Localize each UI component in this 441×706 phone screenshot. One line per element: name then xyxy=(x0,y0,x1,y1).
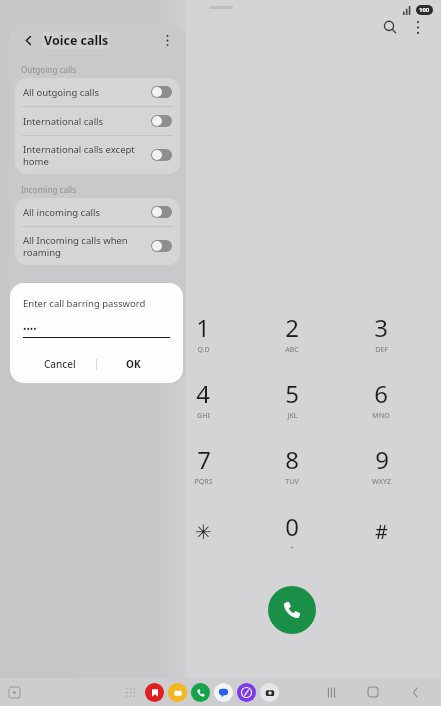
button[interactable]: Recent apps panel xyxy=(6,684,22,700)
button[interactable] xyxy=(151,240,172,252)
staticText: WXYZ xyxy=(372,477,391,487)
staticText: •••• xyxy=(23,322,37,334)
button[interactable]: Recents xyxy=(319,680,343,704)
button[interactable]: Cancel xyxy=(23,349,96,379)
button[interactable] xyxy=(151,115,172,127)
staticText: Voice calls xyxy=(44,32,109,49)
button[interactable]: 4 xyxy=(170,373,236,425)
staticText: 9 xyxy=(375,443,389,476)
staticText: All Incoming calls when roaming xyxy=(23,234,145,259)
staticText: Incoming calls xyxy=(21,184,77,195)
staticText: 2 xyxy=(285,311,299,344)
staticText: GHI xyxy=(197,411,210,421)
staticText: All outgoing calls xyxy=(23,86,145,99)
button[interactable] xyxy=(151,86,172,98)
staticText: 3 xyxy=(374,311,388,344)
button[interactable]: OK xyxy=(97,349,170,379)
button[interactable] xyxy=(151,206,172,218)
staticText: + xyxy=(290,544,294,552)
button[interactable]: Files xyxy=(168,683,187,702)
staticText: DEF xyxy=(375,345,388,355)
button[interactable]: Back xyxy=(403,680,427,704)
button[interactable]: Notes xyxy=(145,683,164,702)
button[interactable]: 7 xyxy=(170,439,236,491)
staticText: 5 xyxy=(285,377,299,410)
staticText: Enter call barring password xyxy=(23,297,146,310)
button[interactable]: # xyxy=(348,505,414,557)
staticText: ABC xyxy=(285,345,299,355)
staticText: 0 xyxy=(285,510,299,543)
button[interactable]: 5 xyxy=(259,373,325,425)
button[interactable]: ✳ xyxy=(170,505,236,557)
button[interactable]: 1 xyxy=(170,307,236,359)
button[interactable]: 3 xyxy=(348,307,414,359)
button[interactable]: Home xyxy=(361,680,385,704)
button[interactable]: All outgoing calls xyxy=(15,78,180,106)
button[interactable]: All incoming calls xyxy=(15,198,180,226)
button[interactable]: Phone xyxy=(191,683,210,702)
staticText: PQRS xyxy=(194,477,213,487)
staticText: ✳ xyxy=(195,520,212,543)
button[interactable]: All apps xyxy=(120,682,140,702)
button[interactable]: 9 xyxy=(348,439,414,491)
staticText: MNO xyxy=(372,411,390,421)
button[interactable]: 0 xyxy=(259,505,325,557)
staticText: 4 xyxy=(196,377,210,410)
staticText: Q.D xyxy=(197,345,210,355)
staticText: 8 xyxy=(285,443,299,476)
button[interactable]: Messages xyxy=(214,683,233,702)
button[interactable]: International calls xyxy=(15,107,180,135)
button[interactable]: 2 xyxy=(259,307,325,359)
staticText: JKL xyxy=(287,411,298,421)
button[interactable]: More options xyxy=(405,14,431,40)
staticText: OK xyxy=(126,357,141,371)
staticText: 100 xyxy=(419,6,430,14)
staticText: International calls except home xyxy=(23,143,145,168)
button[interactable]: More options xyxy=(157,30,177,50)
staticText: International calls xyxy=(23,115,145,128)
staticText: 7 xyxy=(197,443,211,476)
staticText: TUV xyxy=(285,477,299,487)
button[interactable]: Search xyxy=(375,14,405,40)
button[interactable]: Browser xyxy=(237,683,256,702)
staticText: Cancel xyxy=(44,357,76,371)
button[interactable]: Back xyxy=(18,30,38,50)
button[interactable]: 6 xyxy=(348,373,414,425)
staticText: Outgoing calls xyxy=(21,64,77,75)
button[interactable]: International calls except home xyxy=(15,136,180,174)
staticText: All incoming calls xyxy=(23,206,145,219)
staticText: 6 xyxy=(374,377,388,410)
staticText: 1 xyxy=(196,311,210,344)
button[interactable] xyxy=(151,149,172,161)
staticText: # xyxy=(375,518,388,545)
button[interactable]: All Incoming calls when roaming xyxy=(15,227,180,265)
button[interactable]: Camera xyxy=(260,683,279,702)
button[interactable]: 8 xyxy=(259,439,325,491)
button[interactable]: Call xyxy=(268,586,316,634)
